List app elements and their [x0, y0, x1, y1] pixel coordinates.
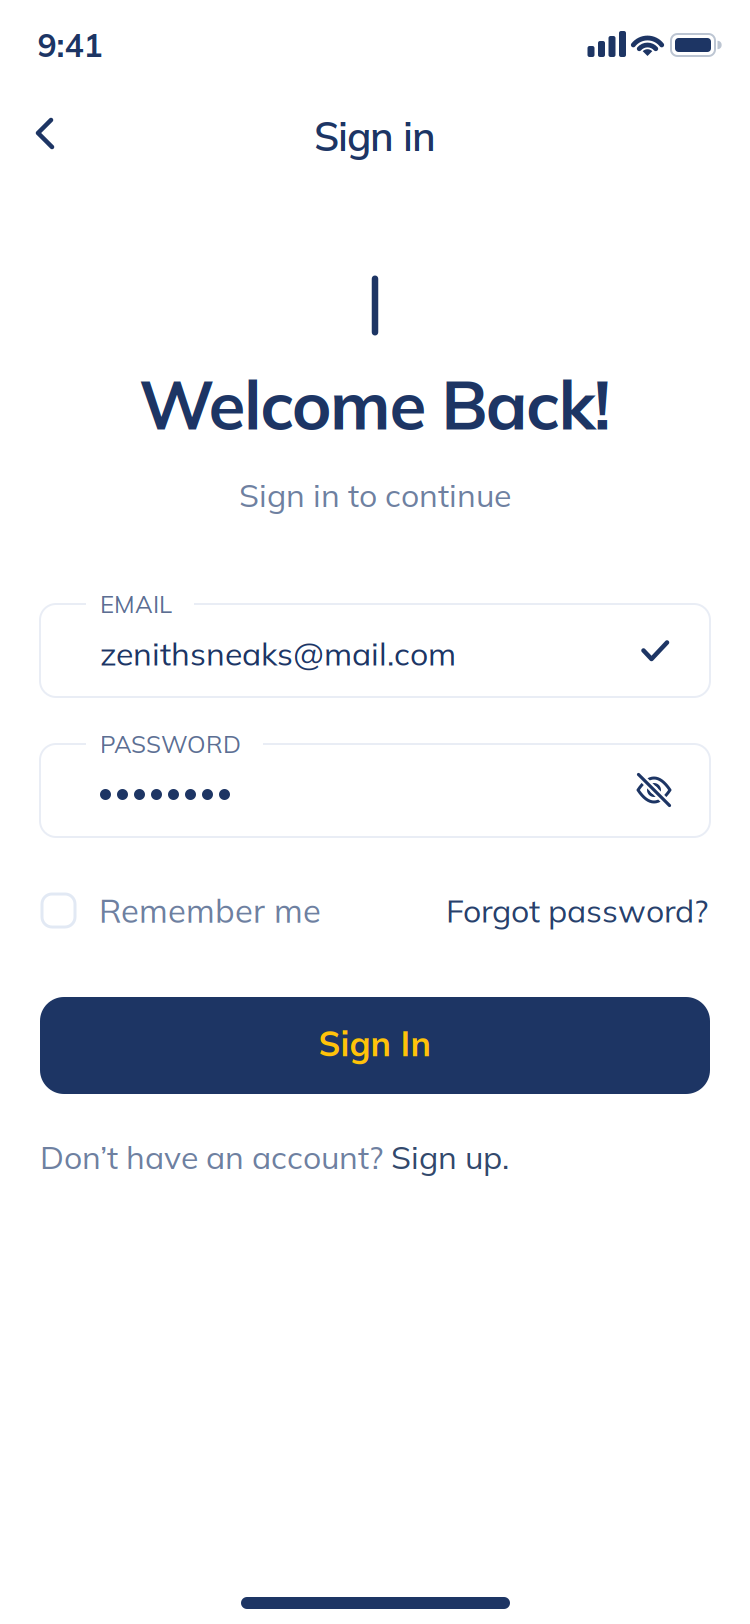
staticText: Welcome Back! [139, 362, 611, 446]
staticText: 9:41 [37, 25, 102, 65]
staticText: Remember me [99, 890, 321, 931]
button[interactable]: Remember me [42, 890, 321, 931]
button[interactable]: Sign up. [391, 1137, 509, 1177]
staticText: Forgot password? [446, 890, 708, 931]
staticText: PASSWORD [100, 729, 241, 759]
button[interactable] [30, 116, 66, 152]
button[interactable]: Forgot password? [446, 890, 708, 931]
staticText: zenithsneaks@mail.com [100, 633, 456, 674]
staticText: Sign in to continue [239, 475, 511, 515]
staticText: Don’t have an account? [40, 1137, 391, 1177]
button[interactable] [630, 766, 678, 814]
staticText: Sign up. [391, 1137, 509, 1177]
button[interactable]: zenithsneaks@mail.com [40, 604, 710, 697]
staticText: EMAIL [100, 589, 172, 619]
staticText: Sign in [314, 111, 436, 161]
button[interactable]: Sign In [40, 997, 710, 1094]
button[interactable]: PASSWORD [40, 744, 710, 837]
staticText: Sign In [318, 1022, 431, 1065]
